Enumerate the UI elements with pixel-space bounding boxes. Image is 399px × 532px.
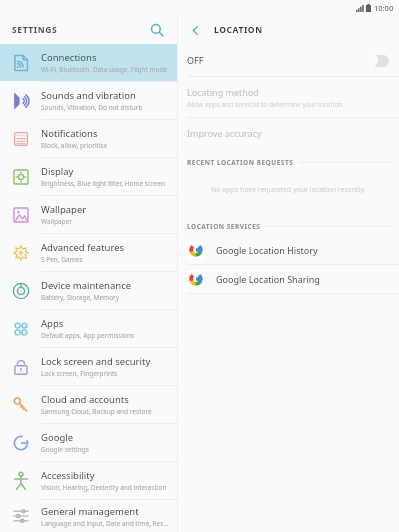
staticText: Wi-Fi, Bluetooth, Data usage, Flight mod… [41,65,168,74]
staticText: Device maintenance [41,279,132,292]
staticText: Google [41,431,74,444]
staticText: Connections [41,51,97,64]
staticText: Sounds, Vibration, Do not disturb [41,103,143,112]
button[interactable]: Device maintenance [0,272,177,309]
staticText: Locating method [187,86,259,98]
button[interactable]: Sounds and vibration [0,82,177,119]
staticText: 10:00 [374,3,394,13]
button[interactable]: Lock screen and security [0,348,177,385]
staticText: Improve accuracy [187,127,262,139]
staticText: Default apps, App permissions [41,331,135,340]
staticText: No apps have requested your location rec… [211,185,366,195]
staticText: Google Location History [216,244,318,256]
button[interactable]: Wallpaper [0,196,177,233]
staticText: Cloud and accounts [41,393,129,406]
button[interactable]: OFF [178,44,399,76]
staticText: S Pen, Games [41,255,83,264]
staticText: Sounds and vibration [41,89,136,102]
button[interactable]: Location toggle, off [363,53,389,68]
staticText: Wallpaper [41,217,72,226]
button[interactable]: General management [0,500,177,532]
staticText: LOCATION [214,24,263,36]
staticText: Battery, Storage, Memory [41,293,120,302]
staticText: General management [41,505,139,518]
staticText: Accessibility [41,469,95,482]
button[interactable]: Advanced features [0,234,177,271]
button[interactable]: Notifications [0,120,177,157]
staticText: Wallpaper [41,203,87,216]
button[interactable]: Improve accuracy [178,118,399,148]
button[interactable]: Google [0,424,177,461]
staticText: OFF [187,54,204,66]
button[interactable]: Search settings [147,20,167,40]
staticText: Samsung Cloud, Backup and restore [41,407,152,416]
button[interactable]: Accessibility [0,462,177,499]
staticText: Brightness, Blue light filter, Home scre… [41,179,165,188]
staticText: Advanced features [41,241,125,254]
staticText: Google Location Sharing [216,273,320,285]
button[interactable]: Cloud and accounts [0,386,177,423]
staticText: Display [41,165,74,178]
staticText: LOCATION SERVICES [187,222,261,231]
staticText: Google settings [41,445,89,454]
staticText: Notifications [41,127,98,140]
staticText: SETTINGS [12,24,58,36]
staticText: Language and input, Date and time, Res..… [41,519,169,528]
staticText: Block, allow, prioritise [41,141,108,150]
staticText: Lock screen and security [41,355,151,368]
staticText: Allow apps and services to determine you… [187,100,345,109]
staticText: Lock screen, Fingerprints [41,369,118,378]
staticText: RECENT LOCATION REQUESTS [187,158,294,167]
button[interactable]: Google Location Sharing [178,265,399,293]
button[interactable]: Navigate back [185,20,205,40]
button[interactable]: Locating method [178,77,399,117]
button[interactable]: Connections [0,44,177,81]
staticText: Vision, Hearing, Dexterity and interacti… [41,483,167,492]
staticText: Apps [41,317,64,330]
button[interactable]: Display [0,158,177,195]
button[interactable]: Google Location History [178,236,399,264]
button[interactable]: Apps [0,310,177,347]
